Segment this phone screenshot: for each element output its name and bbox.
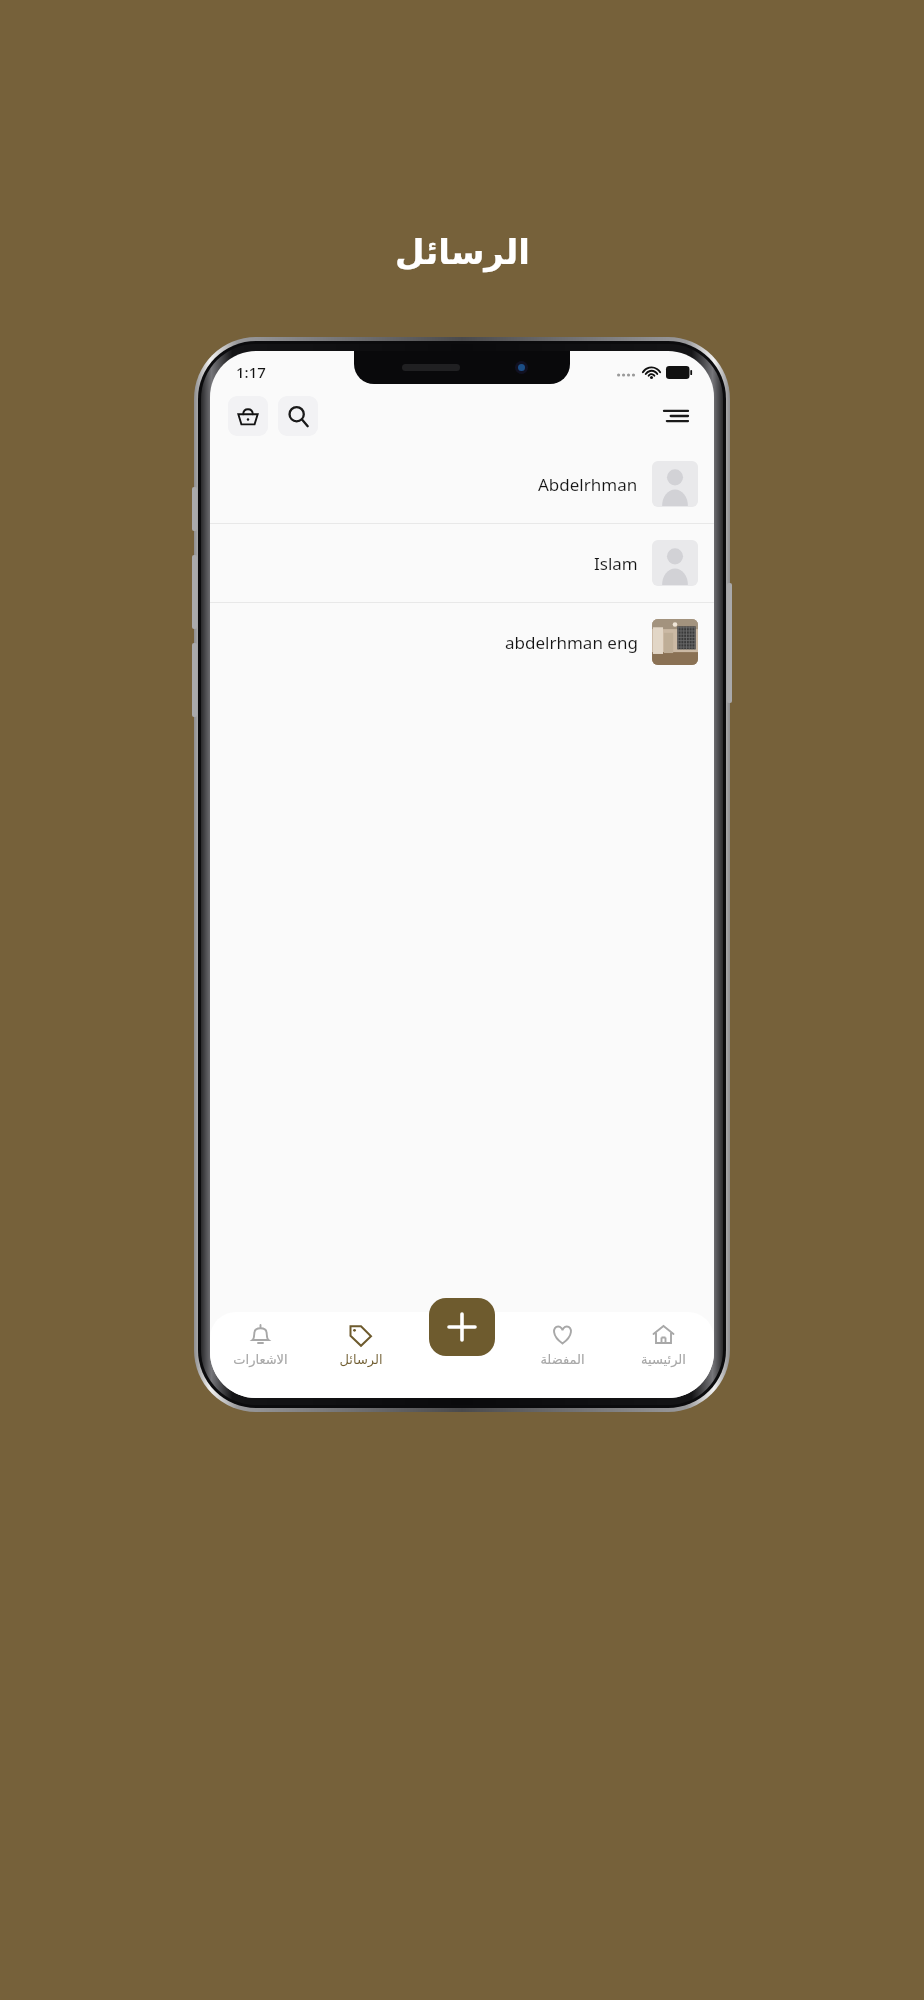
button[interactable]: Menu [656, 396, 696, 436]
button[interactable]: Islam [210, 524, 714, 602]
staticText: الاشعارات [233, 1352, 288, 1367]
button[interactable]: المفضلة [512, 1312, 613, 1376]
button[interactable]: Abdelrhman [210, 445, 714, 523]
button[interactable]: الرسائل [310, 1312, 411, 1376]
button[interactable]: abdelrhman eng [210, 603, 714, 681]
staticText: الرسائل [395, 232, 530, 272]
button[interactable]: الاشعارات [210, 1312, 310, 1376]
button[interactable]: Add [429, 1298, 495, 1356]
staticText: الرئيسية [641, 1352, 686, 1367]
button[interactable]: Search [278, 396, 318, 436]
button[interactable]: Cart [228, 396, 268, 436]
staticText: Abdelrhman [538, 473, 638, 496]
staticText: abdelrhman eng [505, 631, 638, 654]
staticText: Islam [594, 552, 638, 575]
staticText: المفضلة [540, 1352, 585, 1367]
button[interactable]: الرئيسية [613, 1312, 714, 1376]
staticText: الرسائل [339, 1352, 383, 1367]
staticText: 1:17 [236, 362, 266, 382]
